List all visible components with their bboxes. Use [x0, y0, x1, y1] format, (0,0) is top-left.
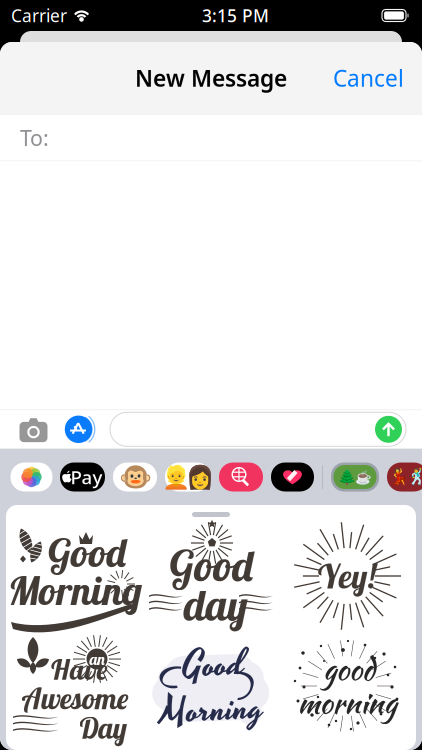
staticText: 3:15 PM: [202, 4, 269, 27]
staticText: day: [184, 578, 248, 631]
staticText: Pay: [70, 465, 102, 489]
staticText: Morning: [8, 565, 142, 615]
button[interactable]: Memoji: [113, 462, 157, 491]
staticText: good: [323, 648, 375, 690]
button[interactable]: Game: [331, 462, 379, 491]
staticText: To:: [20, 123, 49, 152]
staticText: an: [89, 649, 104, 669]
button[interactable]: Memoji Stickers: [165, 462, 211, 491]
button[interactable]: Photos: [11, 462, 52, 491]
staticText: 👱: [162, 464, 190, 490]
staticText: Cancel: [333, 63, 404, 93]
button[interactable]: Apple Pay: [60, 462, 105, 491]
staticText: 🕺: [406, 468, 422, 486]
staticText: ☕: [355, 469, 372, 485]
staticText: Carrier: [11, 4, 67, 27]
button[interactable]: Images: [219, 462, 263, 491]
button[interactable]: Party: [387, 462, 422, 491]
staticText: Yey!: [318, 555, 376, 597]
staticText: New Message: [135, 63, 287, 93]
staticText: Good: [48, 527, 126, 577]
staticText: 🌲: [338, 469, 356, 485]
button[interactable]: Cancel: [325, 54, 412, 102]
staticText: Have: [51, 652, 107, 687]
button[interactable]: App Store: [65, 414, 99, 444]
staticText: 👩: [186, 464, 214, 490]
staticText: Awesome: [21, 680, 128, 716]
staticText: Good: [183, 638, 246, 693]
staticText: Good: [169, 539, 252, 592]
staticText: Morning: [159, 683, 262, 738]
staticText: 💃: [388, 468, 408, 486]
button[interactable]: Camera: [19, 416, 48, 442]
staticText: 🐵: [118, 462, 151, 492]
staticText: morning: [297, 681, 396, 724]
button[interactable]: Send: [375, 416, 402, 443]
button[interactable]: Digital Touch: [271, 462, 314, 491]
staticText: Day: [79, 709, 126, 746]
